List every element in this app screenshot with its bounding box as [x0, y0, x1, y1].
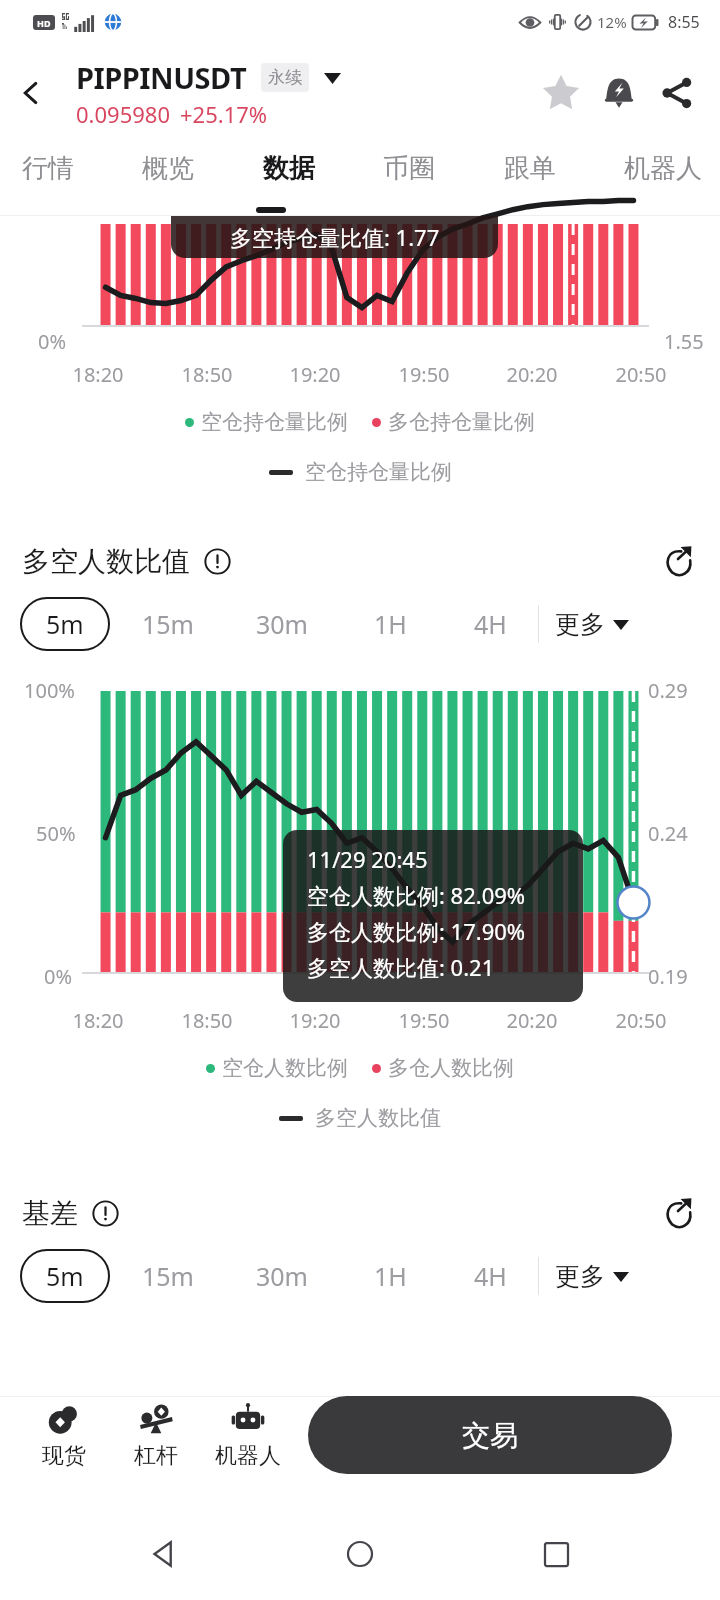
staticText: 多空人数比值: [315, 1105, 441, 1131]
button[interactable]: Information: [88, 1196, 122, 1230]
button[interactable]: 机器人: [620, 142, 706, 195]
staticText: 多仓持仓量比例: [388, 409, 535, 435]
button[interactable]: Back: [0, 62, 62, 124]
staticText: 20:20: [494, 361, 570, 388]
staticText: 0%: [38, 328, 67, 355]
button[interactable]: 15m: [110, 597, 226, 651]
staticText: 50%: [36, 820, 76, 847]
staticText: 1H: [374, 1259, 407, 1293]
staticText: 数据: [263, 152, 315, 185]
button[interactable]: Recent apps: [524, 1522, 588, 1586]
staticText: 5m: [46, 607, 84, 641]
staticText: 0%: [44, 963, 73, 990]
staticText: 4H: [474, 607, 507, 641]
button[interactable]: 15m: [110, 1249, 226, 1303]
button[interactable]: 交易: [308, 1396, 672, 1474]
staticText: 空仓人数比例: 82.09%: [307, 880, 526, 910]
staticText: 更多: [555, 609, 605, 640]
button[interactable]: 永续: [261, 63, 309, 92]
staticText: 多空人数比值: 0.21: [307, 952, 495, 982]
button[interactable]: Favorite: [532, 64, 590, 122]
staticText: 更多: [555, 1261, 605, 1292]
button[interactable]: 现货: [18, 1399, 110, 1472]
staticText: 杠杆: [134, 1442, 178, 1470]
staticText: HD: [37, 17, 51, 29]
staticText: 0.24: [648, 820, 688, 847]
staticText: 交易: [462, 1418, 518, 1453]
staticText: 多空持仓量比值: 1.77: [230, 222, 440, 252]
staticText: 8:55: [668, 11, 700, 33]
staticText: 18:50: [169, 361, 245, 388]
staticText: 永续: [268, 67, 302, 88]
button[interactable]: 杠杆: [110, 1399, 202, 1472]
button[interactable]: Home: [328, 1522, 392, 1586]
staticText: 18:20: [60, 361, 136, 388]
button[interactable]: Share: [648, 64, 706, 122]
button[interactable]: Switch contract: [319, 65, 345, 91]
staticText: 空仓持仓量比例: [305, 459, 452, 485]
button[interactable]: 数据: [259, 142, 319, 195]
staticText: 空仓人数比例: [222, 1055, 348, 1081]
staticText: 4H: [474, 1259, 507, 1293]
staticText: 现货: [42, 1442, 86, 1470]
staticText: 币圈: [383, 152, 435, 185]
button[interactable]: 1H: [338, 1249, 442, 1303]
staticText: PIPPINUSDT: [76, 58, 247, 97]
button[interactable]: 5m: [20, 1249, 110, 1303]
staticText: 0.29: [648, 677, 688, 704]
staticText: 20:50: [603, 361, 679, 388]
staticText: 30m: [256, 607, 308, 641]
button[interactable]: 机器人: [202, 1399, 294, 1472]
staticText: 行情: [22, 152, 74, 185]
button[interactable]: 4H: [442, 1249, 538, 1303]
staticText: 0.19: [648, 963, 688, 990]
staticText: 12%: [597, 12, 627, 32]
button[interactable]: 跟单: [500, 142, 560, 195]
staticText: 18:20: [60, 1007, 136, 1034]
staticText: 20:50: [603, 1007, 679, 1034]
button[interactable]: 5m: [20, 597, 110, 651]
staticText: 多仓人数比例: [388, 1055, 514, 1081]
staticText: 20:20: [494, 1007, 570, 1034]
staticText: 19:50: [386, 1007, 462, 1034]
staticText: 18:50: [169, 1007, 245, 1034]
staticText: 19:20: [277, 1007, 353, 1034]
button[interactable]: 1H: [338, 597, 442, 651]
button[interactable]: 更多: [539, 601, 637, 648]
staticText: 机器人: [624, 152, 702, 185]
staticText: +25.17%: [180, 99, 268, 129]
button[interactable]: 30m: [226, 1249, 338, 1303]
staticText: 30m: [256, 1259, 308, 1293]
staticText: 1.55: [664, 328, 704, 355]
button[interactable]: 币圈: [379, 142, 439, 195]
staticText: 空仓持仓量比例: [201, 409, 348, 435]
button[interactable]: 更多: [539, 1253, 637, 1300]
button[interactable]: 30m: [226, 597, 338, 651]
staticText: 5m: [46, 1259, 84, 1293]
staticText: 多仓人数比例: 17.90%: [307, 916, 526, 946]
button[interactable]: Open full chart: [654, 1189, 702, 1237]
staticText: 概览: [142, 152, 194, 185]
button[interactable]: Information: [200, 544, 234, 578]
staticText: 19:50: [386, 361, 462, 388]
staticText: 跟单: [504, 152, 556, 185]
staticText: 11/29 20:45: [307, 844, 428, 874]
staticText: 15m: [142, 1259, 194, 1293]
staticText: 0.095980: [76, 99, 170, 129]
staticText: 机器人: [215, 1442, 281, 1470]
button[interactable]: Open full chart: [654, 537, 702, 585]
staticText: 100%: [24, 677, 75, 704]
staticText: 多空人数比值: [22, 544, 190, 579]
button[interactable]: 概览: [138, 142, 198, 195]
staticText: 19:20: [277, 361, 353, 388]
button[interactable]: Price alert: [590, 64, 648, 122]
staticText: 15m: [142, 607, 194, 641]
button[interactable]: 行情: [18, 142, 78, 195]
button[interactable]: Back: [132, 1522, 196, 1586]
staticText: 1H: [374, 607, 407, 641]
button[interactable]: 4H: [442, 597, 538, 651]
staticText: 基差: [22, 1196, 78, 1231]
